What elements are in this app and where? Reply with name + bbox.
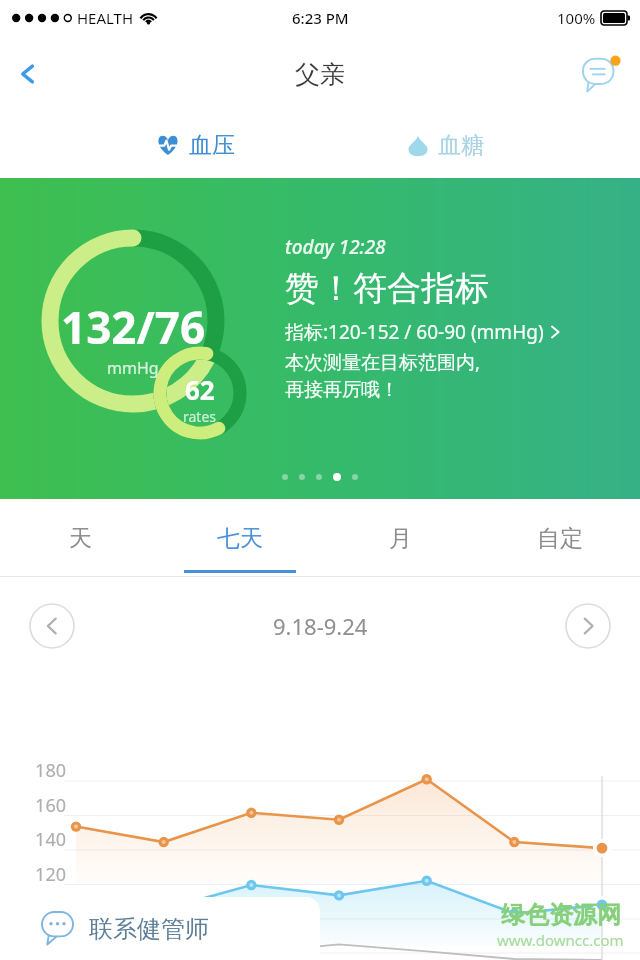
staticText: www.downcc.com (497, 930, 624, 950)
staticText: 联系健管师 (89, 914, 209, 944)
button[interactable]: 自定 (480, 499, 640, 577)
staticText: 120 (26, 862, 66, 887)
button[interactable]: 血压 (70, 120, 320, 170)
staticText: 80 (26, 930, 66, 955)
staticText: 180 (26, 758, 66, 783)
button[interactable]: Messages (578, 50, 626, 98)
staticText: 9.18-9.24 (273, 611, 368, 641)
staticText: 160 (26, 793, 66, 818)
staticText: 100 (26, 896, 66, 921)
button[interactable]: 月 (320, 499, 480, 577)
button[interactable]: 天 (0, 499, 160, 577)
staticText: 血压 (189, 131, 235, 160)
staticText: 赞！符合指标 (285, 267, 489, 310)
staticText: 本次测量在目标范围内, (285, 349, 481, 375)
button[interactable]: 132/76 (0, 178, 640, 499)
staticText: 140 (26, 827, 66, 852)
staticText: rates (183, 407, 217, 426)
staticText: 100% (557, 8, 596, 28)
button[interactable]: 血糖 (320, 120, 570, 170)
staticText: 132/76 (61, 297, 206, 357)
staticText: 月 (389, 524, 412, 553)
staticText: 62 (185, 372, 215, 407)
staticText: 指标:120-152 / 60-90 (mmHg) (285, 319, 544, 345)
staticText: 自定 (537, 524, 583, 553)
button[interactable]: 七天 (160, 499, 320, 577)
staticText: today 12:28 (285, 234, 386, 260)
staticText: 绿色资源网 (501, 900, 621, 930)
staticText: 七天 (217, 524, 263, 553)
staticText: 再接再厉哦！ (285, 378, 399, 402)
staticText: 父亲 (295, 59, 345, 90)
staticText: 6:23 PM (292, 8, 349, 28)
button[interactable]: 联系健管师 (0, 897, 320, 960)
staticText: 血糖 (438, 131, 484, 160)
button[interactable]: Back (0, 46, 56, 102)
staticText: 天 (69, 524, 92, 553)
staticText: mmHg (107, 357, 159, 379)
staticText: HEALTH (77, 8, 134, 28)
button[interactable]: Previous week (29, 603, 75, 649)
button[interactable]: Next week (565, 603, 611, 649)
